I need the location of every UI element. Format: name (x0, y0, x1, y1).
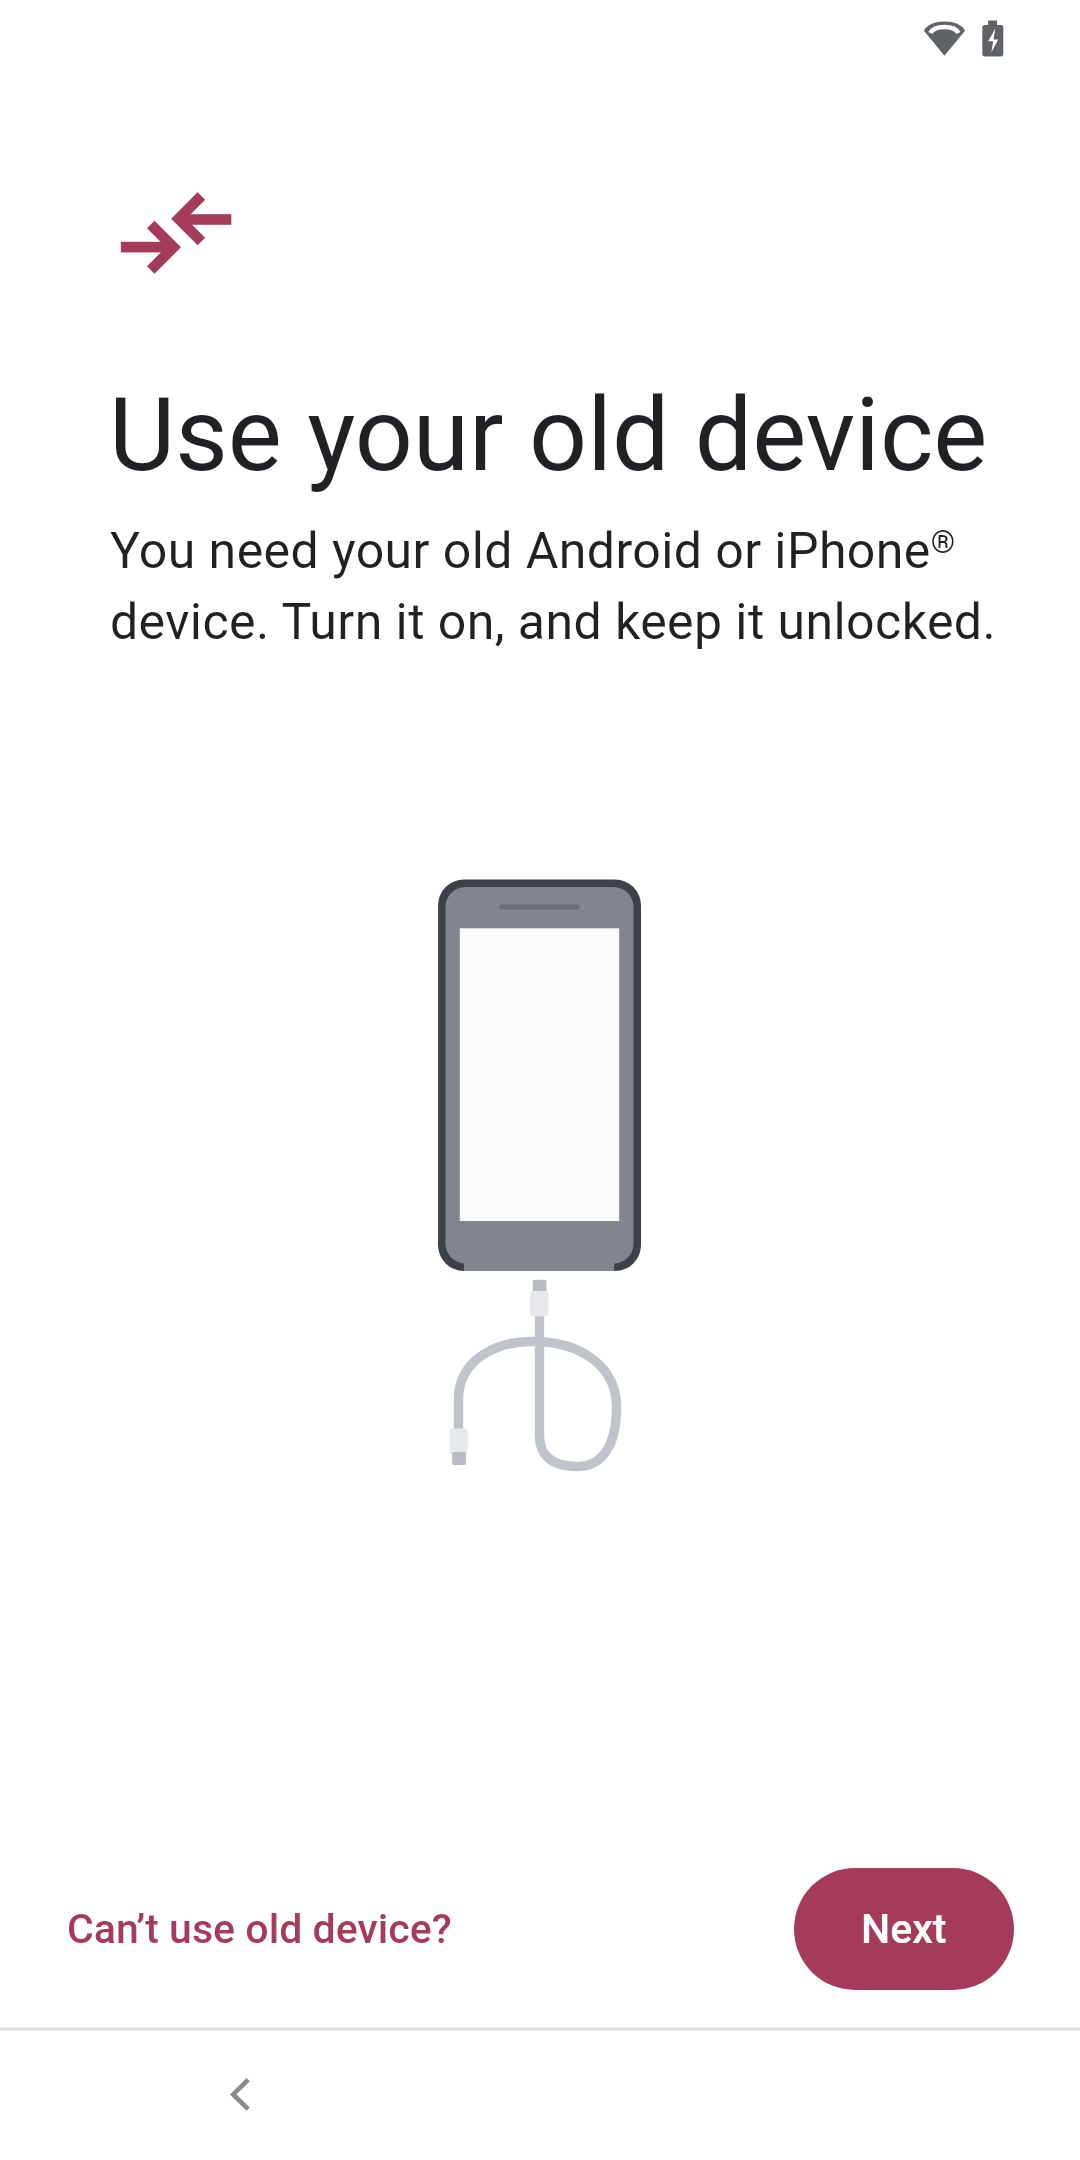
staticText: Next (861, 1905, 947, 1953)
button[interactable]: Back (180, 2035, 300, 2155)
staticText: You need your old Android or iPhone® dev… (110, 522, 1020, 651)
staticText: Can’t use old device? (67, 1905, 452, 1953)
button[interactable]: Can’t use old device? (51, 1893, 468, 1965)
button[interactable]: Next (794, 1868, 1014, 1990)
staticText: Use your old device (109, 375, 988, 495)
